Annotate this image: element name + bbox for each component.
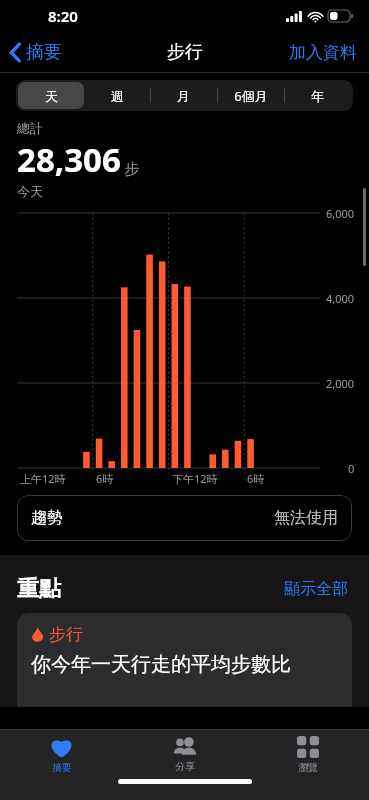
- staticText: 上午12時: [20, 471, 66, 486]
- button[interactable]: 摘要: [0, 37, 70, 68]
- staticText: 摘要: [26, 41, 62, 64]
- button[interactable]: 天: [18, 82, 84, 109]
- staticText: 月: [177, 88, 190, 104]
- staticText: 週: [111, 88, 124, 104]
- staticText: 你今年一天行走的平均步數比: [31, 652, 291, 677]
- staticText: 2,000: [326, 376, 355, 391]
- staticText: 年: [311, 88, 324, 104]
- button[interactable]: 分享: [123, 730, 246, 779]
- staticText: 6時: [96, 471, 114, 486]
- staticText: 0: [348, 461, 355, 476]
- staticText: 無法使用: [274, 508, 338, 528]
- button[interactable]: 顯示全部: [280, 575, 352, 603]
- staticText: 分享: [175, 760, 195, 773]
- staticText: 今天: [17, 183, 43, 199]
- staticText: 總計: [17, 120, 43, 136]
- staticText: 趨勢: [31, 508, 63, 528]
- button[interactable]: 年: [284, 82, 351, 109]
- button[interactable]: 摘要: [0, 730, 123, 779]
- button[interactable]: 週: [84, 82, 150, 109]
- button[interactable]: 加入資料: [277, 36, 369, 69]
- staticText: 28,306: [17, 137, 121, 182]
- button[interactable]: 6個月: [217, 82, 284, 109]
- button[interactable]: 月: [150, 82, 217, 109]
- staticText: 6,000: [326, 206, 355, 221]
- staticText: 6個月: [234, 87, 268, 105]
- button[interactable]: 趨勢: [17, 495, 352, 541]
- staticText: 4,000: [326, 291, 355, 306]
- staticText: 摘要: [52, 761, 72, 774]
- staticText: 步行: [49, 624, 83, 645]
- staticText: 重點: [17, 575, 61, 603]
- staticText: 6時: [247, 471, 265, 486]
- staticText: 天: [45, 88, 58, 104]
- staticText: 瀏覽: [298, 761, 318, 774]
- staticText: 下午12時: [172, 471, 218, 486]
- button[interactable]: 步行: [17, 613, 352, 707]
- button[interactable]: 瀏覽: [246, 730, 369, 779]
- staticText: 步行: [167, 41, 203, 64]
- staticText: 步: [124, 160, 139, 179]
- staticText: 8:20: [48, 6, 78, 26]
